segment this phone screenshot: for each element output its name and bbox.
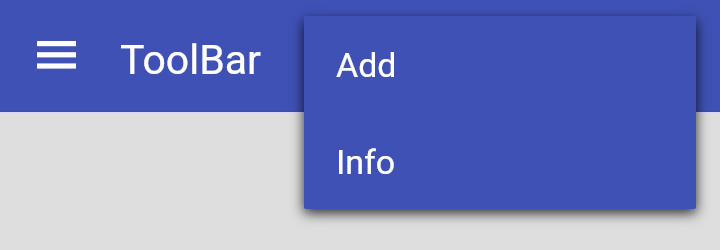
staticText: Info: [336, 142, 396, 182]
staticText: ToolBar: [120, 36, 261, 84]
staticText: Add: [336, 45, 397, 85]
button[interactable]: Info: [304, 116, 696, 208]
button[interactable]: Add: [304, 16, 696, 116]
button[interactable]: Open navigation menu: [18, 18, 94, 92]
